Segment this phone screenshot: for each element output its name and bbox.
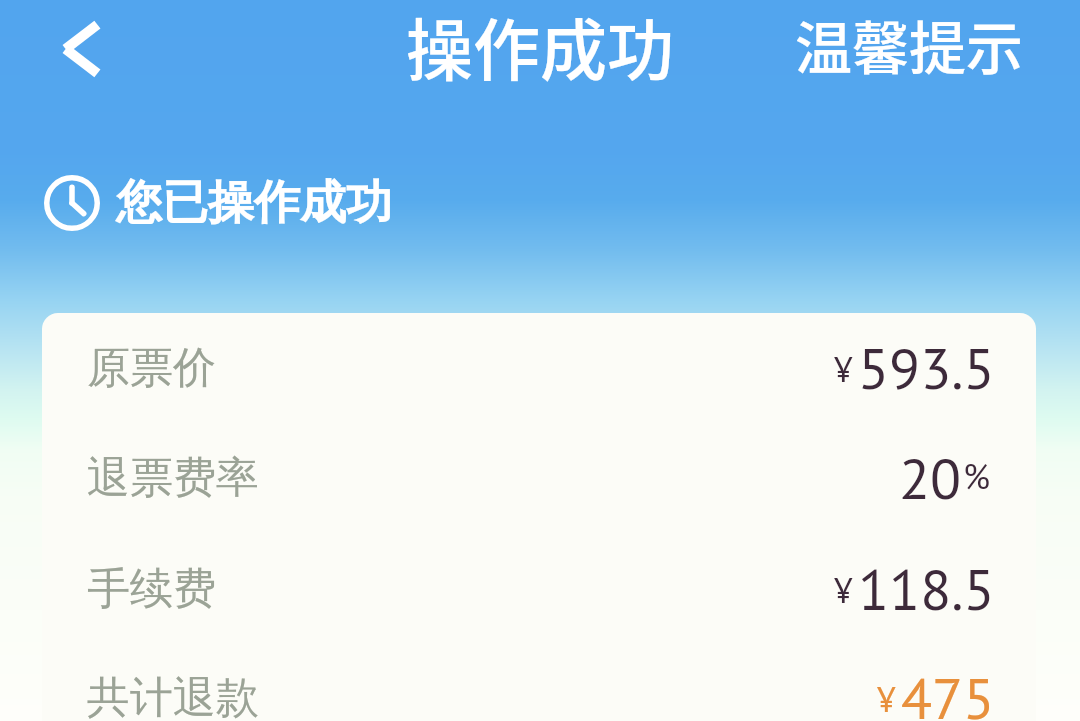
staticText: ¥ [834, 347, 853, 391]
staticText: 操作成功 [406, 0, 674, 93]
staticText: 您已操作成功 [116, 174, 392, 232]
staticText: 118.5 [858, 552, 995, 626]
button[interactable]: 原票价 [87, 313, 995, 423]
staticText: ¥ [877, 677, 896, 721]
staticText: % [963, 453, 991, 498]
staticText: 20 [899, 441, 962, 515]
staticText: 手续费 [87, 562, 216, 616]
button[interactable]: 共计退款 [87, 644, 995, 721]
staticText: 退票费率 [87, 451, 259, 505]
staticText: ¥ [834, 568, 853, 612]
button[interactable]: Back [33, 1, 129, 97]
button[interactable]: 手续费 [87, 533, 995, 644]
button[interactable]: 温馨提示 [795, 3, 1023, 86]
staticText: 原票价 [87, 341, 216, 395]
button[interactable]: 退票费率 [87, 423, 995, 533]
staticText: 475 [901, 661, 995, 721]
staticText: 温馨提示 [795, 3, 1023, 86]
staticText: 593.5 [858, 331, 995, 405]
staticText: 共计退款 [87, 671, 259, 721]
